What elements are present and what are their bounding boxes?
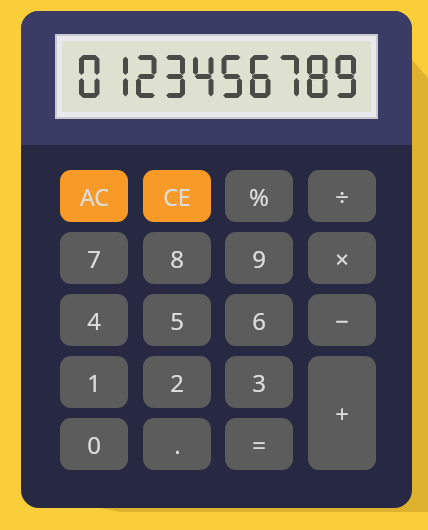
- button[interactable]: Minus: [308, 294, 376, 346]
- staticText: ×: [335, 242, 349, 275]
- staticText: 3: [252, 366, 266, 399]
- button[interactable]: 7: [60, 232, 128, 284]
- staticText: 9: [252, 242, 266, 275]
- staticText: +: [335, 397, 349, 430]
- button[interactable]: AC: [60, 170, 128, 222]
- staticText: 7: [87, 242, 101, 275]
- button[interactable]: 9: [225, 232, 293, 284]
- button[interactable]: Multiply: [308, 232, 376, 284]
- staticText: %: [249, 180, 269, 213]
- staticText: 1: [87, 366, 101, 399]
- button[interactable]: 0: [60, 418, 128, 470]
- staticText: 5: [170, 304, 184, 337]
- button[interactable]: 3: [225, 356, 293, 408]
- staticText: ÷: [335, 180, 349, 213]
- button[interactable]: Decimal point: [143, 418, 211, 470]
- staticText: CE: [163, 181, 191, 212]
- staticText: −: [335, 304, 349, 337]
- button[interactable]: 5: [143, 294, 211, 346]
- button[interactable]: Equals: [225, 418, 293, 470]
- staticText: =: [252, 428, 266, 461]
- staticText: 8: [170, 242, 184, 275]
- button[interactable]: 2: [143, 356, 211, 408]
- button[interactable]: 4: [60, 294, 128, 346]
- button[interactable]: 1: [60, 356, 128, 408]
- button[interactable]: Percent: [225, 170, 293, 222]
- button[interactable]: Plus: [308, 356, 376, 470]
- button[interactable]: 6: [225, 294, 293, 346]
- staticText: 6: [252, 304, 266, 337]
- staticText: 2: [170, 366, 184, 399]
- staticText: .: [174, 428, 181, 461]
- button[interactable]: Divide: [308, 170, 376, 222]
- button[interactable]: 8: [143, 232, 211, 284]
- staticText: 4: [87, 304, 101, 337]
- button[interactable]: CE: [143, 170, 211, 222]
- staticText: 0: [87, 428, 101, 461]
- staticText: AC: [80, 181, 109, 212]
